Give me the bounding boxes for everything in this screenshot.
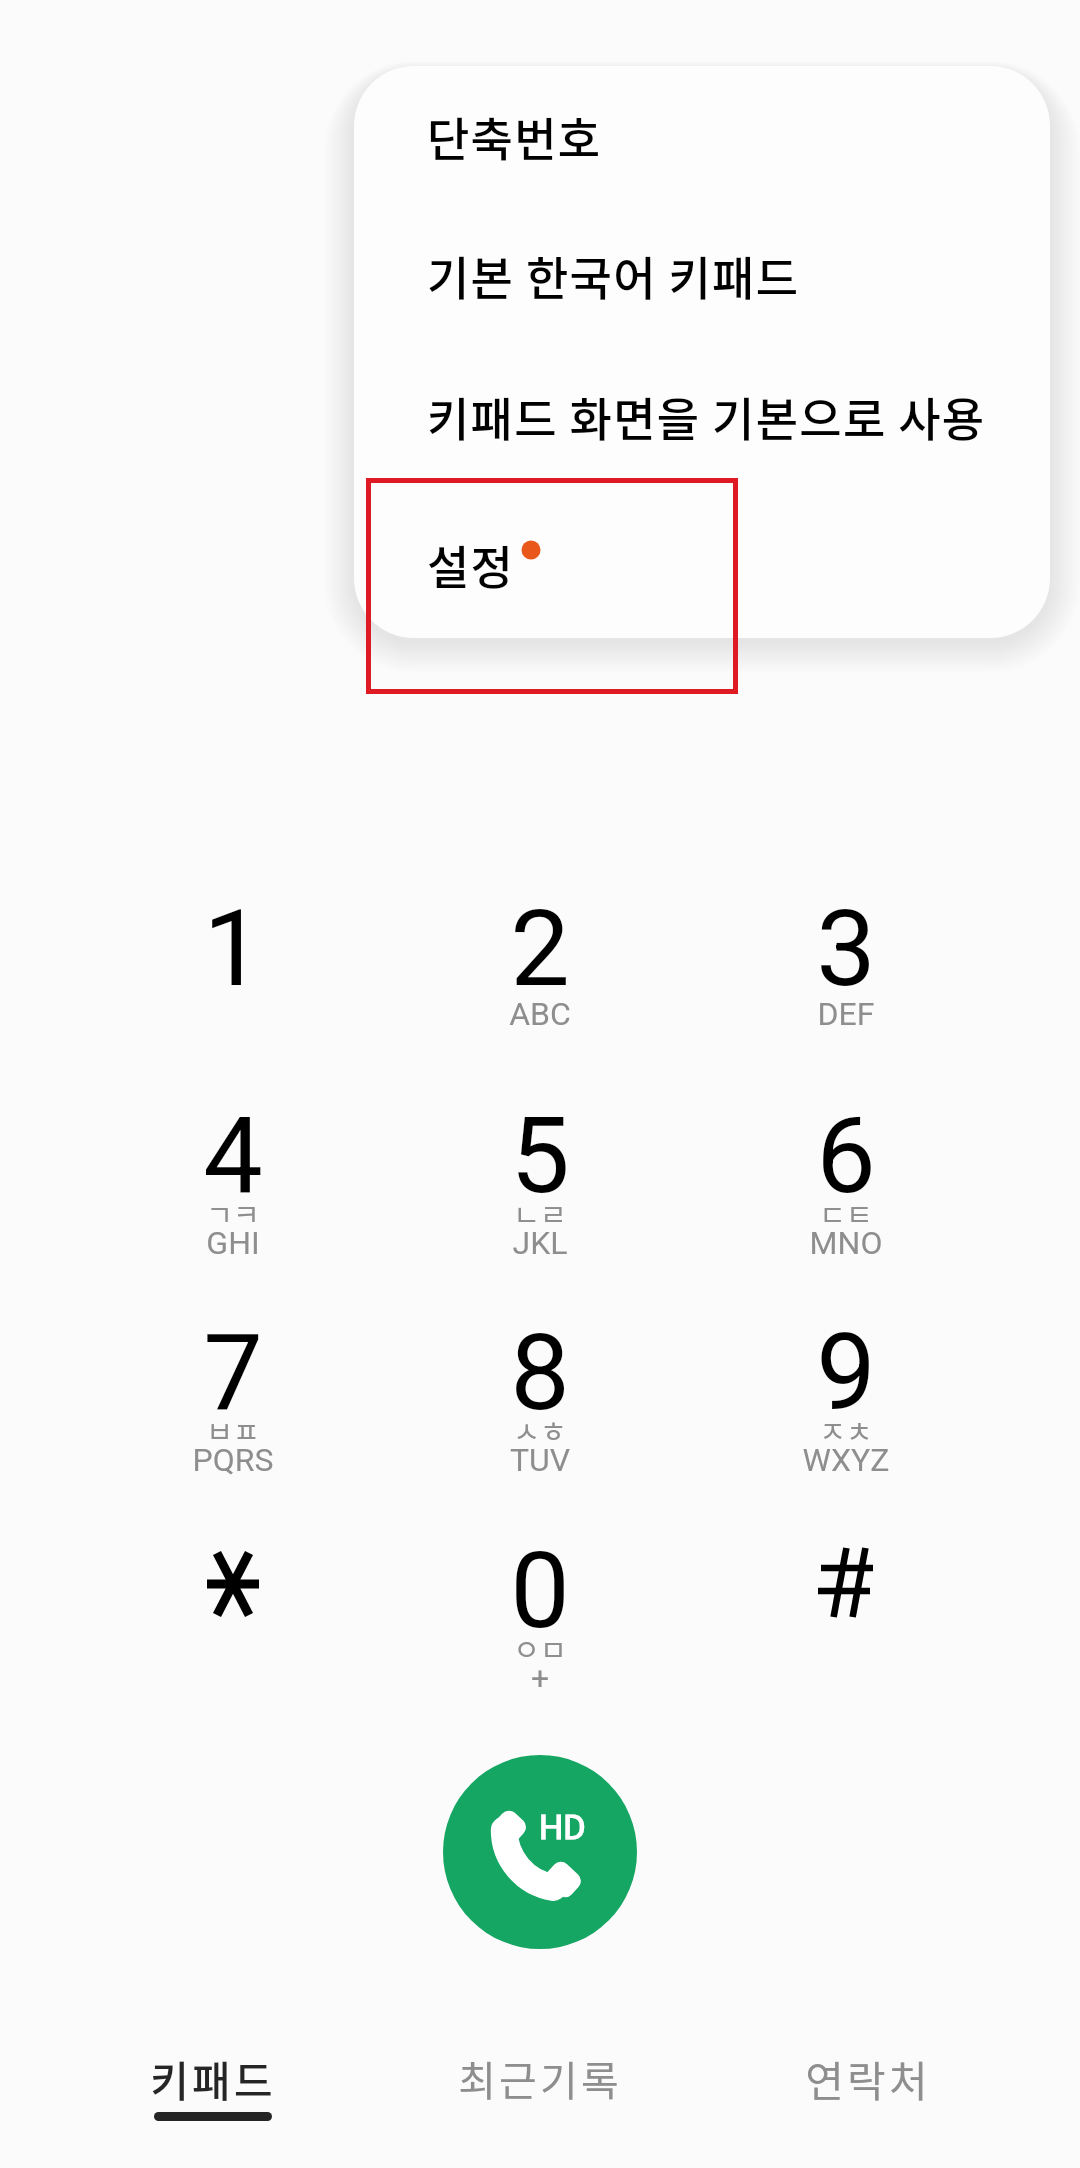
staticText: GHI bbox=[88, 1224, 378, 1262]
button[interactable]: Dial 7 bbox=[88, 1271, 378, 1471]
staticText: 3 bbox=[701, 887, 991, 1011]
button[interactable]: Dial 5 bbox=[395, 1054, 685, 1254]
staticText: 1 bbox=[88, 887, 378, 1011]
staticText: 0 bbox=[395, 1529, 685, 1653]
staticText: DEF bbox=[701, 995, 991, 1033]
button[interactable]: Dial 2 bbox=[395, 847, 685, 1047]
button[interactable]: Dial 6 bbox=[701, 1054, 991, 1254]
staticText: 9 bbox=[701, 1311, 991, 1435]
staticText: 설정 bbox=[427, 531, 515, 598]
button[interactable]: Dial 1 bbox=[88, 847, 378, 1047]
staticText: 단축번호 bbox=[427, 103, 602, 170]
button[interactable]: 키패드 bbox=[63, 2010, 363, 2168]
button[interactable]: 기본 한국어 키패드 bbox=[354, 211, 1050, 350]
staticText: ㅇㅁ bbox=[395, 1627, 685, 1669]
staticText: 연락처 bbox=[718, 2048, 1018, 2109]
staticText: PQRS bbox=[88, 1441, 378, 1479]
button[interactable]: Dial * bbox=[88, 1489, 378, 1689]
staticText: 7 bbox=[88, 1311, 378, 1435]
staticText: 5 bbox=[395, 1094, 685, 1218]
staticText: 2 bbox=[395, 887, 685, 1011]
staticText: ㄴㄹ bbox=[395, 1192, 685, 1234]
staticText: 4 bbox=[88, 1094, 378, 1218]
staticText: HD bbox=[539, 1807, 586, 1847]
button[interactable]: 최근기록 bbox=[390, 2010, 690, 2168]
button[interactable]: Dial 9 bbox=[701, 1271, 991, 1471]
staticText: 키패드 bbox=[63, 2048, 363, 2109]
staticText: 8 bbox=[395, 1311, 685, 1435]
staticText: 최근기록 bbox=[390, 2048, 690, 2107]
staticText: ㅂㅍ bbox=[88, 1409, 378, 1451]
staticText: ㅈㅊ bbox=[701, 1409, 991, 1451]
button[interactable]: 연락처 bbox=[718, 2010, 1018, 2168]
staticText: ㅅㅎ bbox=[395, 1409, 685, 1451]
staticText: + bbox=[395, 1659, 685, 1697]
button[interactable]: Dial # bbox=[701, 1489, 991, 1689]
button[interactable]: 키패드 화면을 기본으로 사용 bbox=[354, 352, 1050, 491]
staticText: TUV bbox=[395, 1441, 685, 1479]
staticText: WXYZ bbox=[701, 1441, 991, 1479]
button[interactable]: Call bbox=[443, 1755, 637, 1949]
staticText: 기본 한국어 키패드 bbox=[427, 242, 800, 309]
button[interactable]: 설정 bbox=[354, 500, 1050, 639]
button[interactable]: Dial 8 bbox=[395, 1271, 685, 1471]
button[interactable]: 단축번호 bbox=[354, 72, 1050, 211]
button[interactable]: Dial 4 bbox=[88, 1054, 378, 1254]
button[interactable]: Dial 0 bbox=[395, 1489, 685, 1689]
staticText: MNO bbox=[701, 1224, 991, 1262]
staticText: JKL bbox=[395, 1224, 685, 1262]
staticText: 6 bbox=[701, 1094, 991, 1218]
staticText: 키패드 화면을 기본으로 사용 bbox=[427, 383, 986, 450]
staticText: ABC bbox=[395, 995, 685, 1033]
staticText: ㄱㅋ bbox=[88, 1192, 378, 1234]
button[interactable]: Dial 3 bbox=[701, 847, 991, 1047]
staticText: ㄷㅌ bbox=[701, 1192, 991, 1234]
